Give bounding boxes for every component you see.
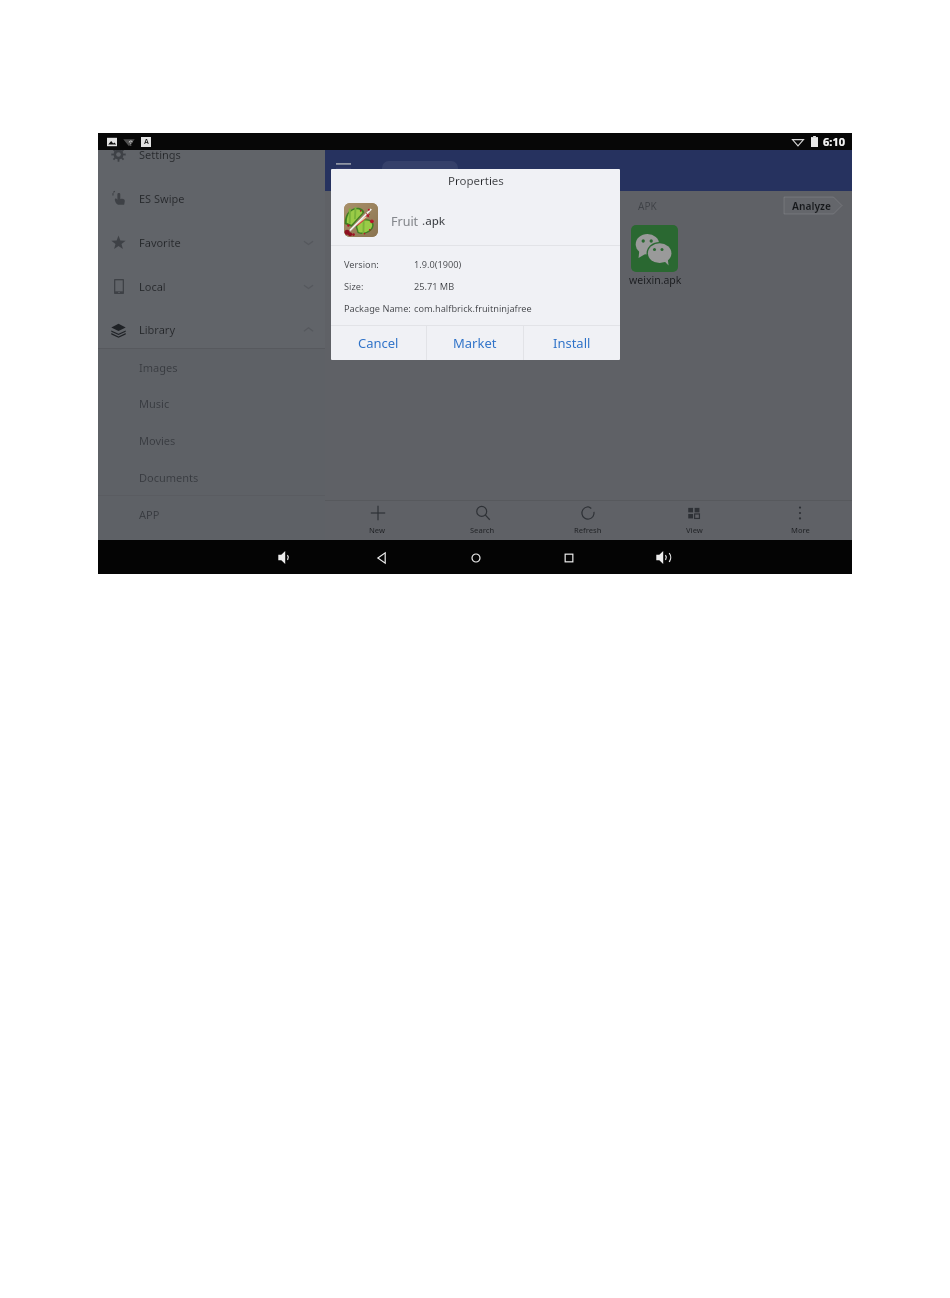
staticText: Cancel bbox=[358, 334, 399, 352]
staticText: New bbox=[369, 525, 386, 535]
staticText: 1.9.0(1900) bbox=[414, 258, 462, 271]
staticText: More bbox=[791, 525, 810, 535]
button[interactable]: Library bbox=[98, 308, 325, 350]
button[interactable]: Local bbox=[98, 265, 325, 307]
staticText: Refresh bbox=[574, 525, 602, 535]
staticText: APP bbox=[139, 507, 160, 522]
button[interactable]: Images bbox=[98, 349, 325, 385]
button[interactable]: More bbox=[747, 500, 852, 540]
staticText: Favorite bbox=[139, 235, 181, 250]
staticText: Settings bbox=[139, 147, 181, 162]
staticText: Fruit bbox=[391, 213, 419, 230]
staticText: 25.71 MB bbox=[414, 280, 455, 293]
button[interactable]: Settings bbox=[98, 133, 325, 175]
button[interactable]: Market bbox=[427, 326, 523, 360]
button[interactable]: Cancel bbox=[331, 326, 426, 360]
staticText: com.halfbrick.fruitninjafree bbox=[414, 302, 532, 315]
staticText: View bbox=[686, 525, 703, 535]
staticText: Package Name: bbox=[344, 302, 411, 315]
staticText: A bbox=[144, 137, 149, 147]
staticText: Music bbox=[139, 396, 170, 411]
staticText: Install bbox=[553, 334, 591, 352]
staticText: APK bbox=[638, 199, 657, 213]
button[interactable]: Recent apps bbox=[552, 540, 586, 574]
staticText: Library bbox=[139, 322, 176, 337]
button[interactable]: Volume down bbox=[268, 540, 302, 574]
button[interactable]: Search bbox=[430, 500, 535, 540]
staticText: Search bbox=[470, 525, 495, 535]
button[interactable]: New bbox=[325, 500, 430, 540]
staticText: Properties bbox=[448, 173, 504, 189]
button[interactable]: weixin.apk bbox=[631, 225, 684, 287]
staticText: weixin.apk bbox=[629, 273, 682, 287]
button[interactable]: View bbox=[641, 500, 747, 540]
staticText: .apk bbox=[422, 213, 446, 229]
button[interactable]: Favorite bbox=[98, 221, 325, 263]
button[interactable]: Install bbox=[524, 326, 620, 360]
staticText: 6:10 bbox=[823, 134, 845, 149]
staticText: Movies bbox=[139, 433, 176, 448]
button[interactable]: Menu bbox=[336, 163, 351, 174]
staticText: Version: bbox=[344, 258, 379, 271]
button[interactable]: Refresh bbox=[535, 500, 641, 540]
staticText: Size: bbox=[344, 280, 364, 293]
staticText: Analyze bbox=[792, 199, 831, 213]
staticText: ES Swipe bbox=[139, 191, 185, 206]
staticText: Images bbox=[139, 360, 178, 375]
button[interactable]: Home bbox=[459, 540, 493, 574]
button[interactable]: Documents bbox=[98, 459, 325, 495]
button[interactable]: Analyze bbox=[784, 197, 842, 214]
staticText: Local bbox=[139, 279, 166, 294]
button[interactable]: Movies bbox=[98, 422, 325, 458]
button[interactable]: Home tab bbox=[382, 161, 458, 191]
button[interactable]: Volume up bbox=[646, 540, 680, 574]
button[interactable]: Back bbox=[365, 540, 399, 574]
staticText: Documents bbox=[139, 470, 199, 485]
staticText: Market bbox=[453, 334, 497, 352]
button[interactable]: ES Swipe bbox=[98, 177, 325, 219]
